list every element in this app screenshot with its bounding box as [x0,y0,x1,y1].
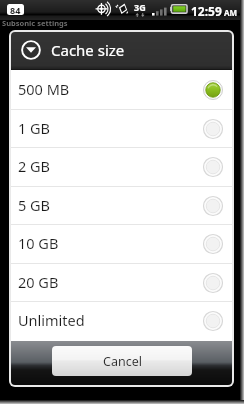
staticText: 1 GB [18,118,51,138]
button[interactable]: 20 GB [11,263,232,302]
staticText: 10 GB [18,233,59,253]
button[interactable]: 10 GB [11,224,232,263]
button[interactable]: 5 GB [11,186,232,225]
button[interactable]: 2 GB [11,147,232,186]
staticText: 2 GB [18,156,51,176]
button[interactable]: Cancel [52,346,192,376]
staticText: Cache size [51,40,125,60]
button[interactable]: Unlimited [11,301,232,340]
button[interactable]: 1 GB [11,109,232,148]
staticText: 12:59 [191,3,222,19]
staticText: 20 GB [18,272,59,292]
staticText: Unlimited [18,310,85,330]
staticText: AM [224,7,238,18]
staticText: 84 [10,4,21,15]
staticText: 500 MB [18,79,70,99]
staticText: 3G [134,1,146,13]
staticText: 5 GB [18,195,51,215]
button[interactable]: 500 MB [11,70,232,109]
staticText: Subsonic settings [2,18,68,28]
staticText: Cancel [103,353,142,370]
